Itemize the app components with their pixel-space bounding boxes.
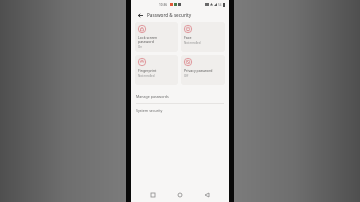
button[interactable]: Face [181,22,225,52]
staticText: Not enrolled [184,41,201,45]
button[interactable]: Back [202,190,212,200]
staticText: Not enrolled [138,74,155,78]
staticText: On [138,45,142,49]
staticText: Face [184,35,192,40]
button[interactable]: Privacy password [181,55,225,85]
staticText: Lock screen password [138,35,158,44]
staticText: System security [136,108,163,113]
button[interactable]: Home [175,190,185,200]
staticText: Manage passwords [136,94,169,99]
button[interactable]: System security [131,104,229,117]
staticText: Fingerprint [138,68,157,73]
button[interactable]: Lock screen password [135,22,178,52]
button[interactable]: Manage passwords [131,90,229,103]
staticText: 54 [218,3,222,7]
staticText: Password & security [147,12,192,18]
button[interactable]: Back [136,11,144,19]
staticText: 10:36 [159,3,168,7]
staticText: Privacy password [184,68,213,73]
button[interactable]: Recents [148,190,158,200]
button[interactable]: Fingerprint [135,55,178,85]
staticText: Off [184,74,189,78]
